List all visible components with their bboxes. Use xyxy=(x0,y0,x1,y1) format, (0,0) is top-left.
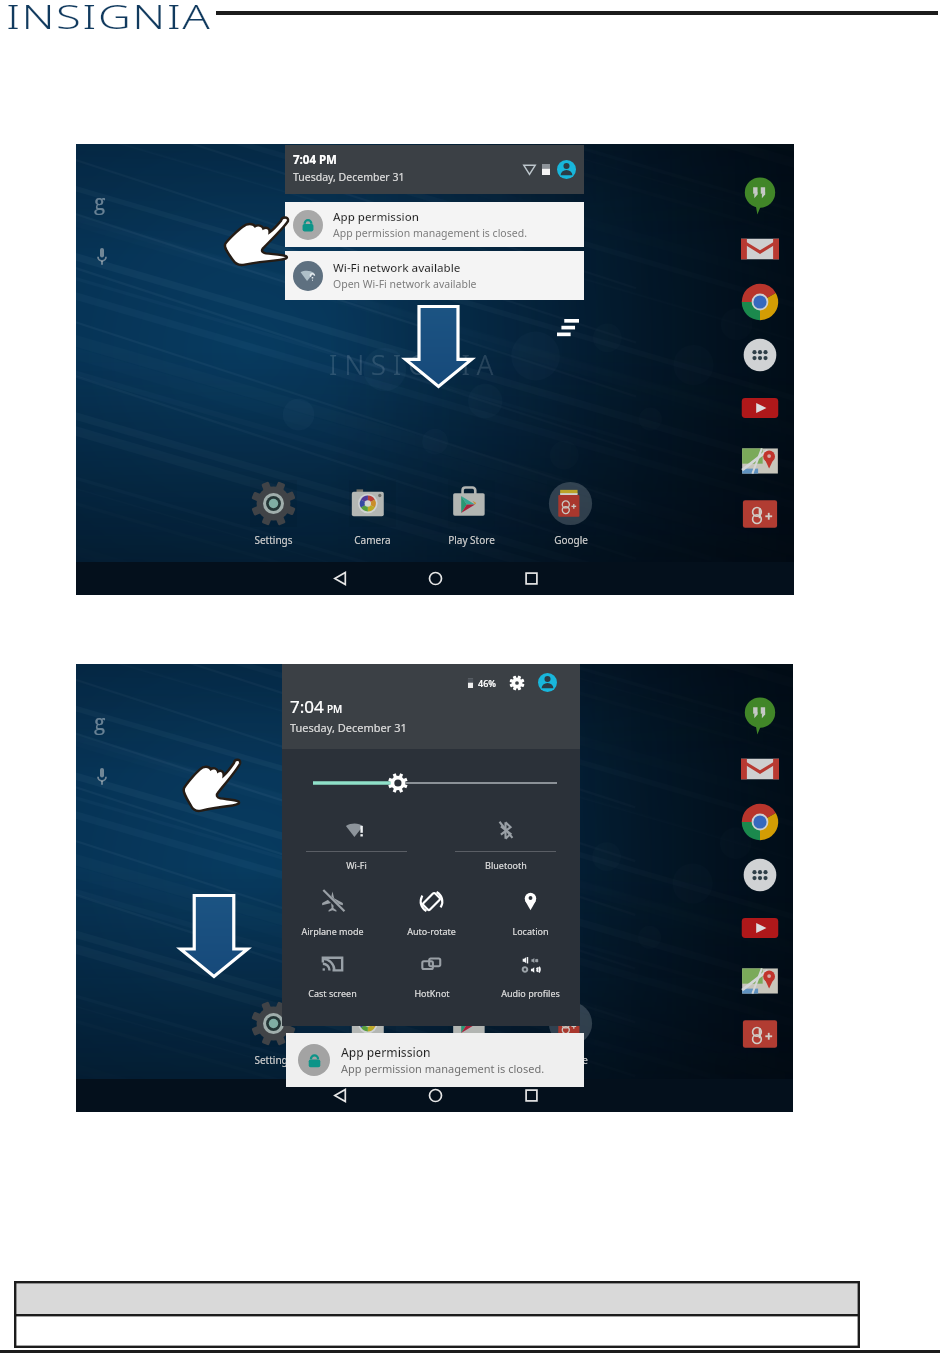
staticText: Bluetooth xyxy=(485,859,527,871)
staticText: Airplane mode xyxy=(301,925,364,937)
staticText: App permission xyxy=(333,209,419,225)
staticText: Play Store xyxy=(448,533,495,547)
button[interactable]: App permission xyxy=(285,202,584,247)
staticText: HotKnot xyxy=(414,987,450,999)
button[interactable]: Gmail xyxy=(741,750,779,788)
button[interactable]: Cast screen xyxy=(282,952,382,999)
button[interactable]: Bluetooth xyxy=(431,819,580,871)
button[interactable]: Airplane mode xyxy=(282,890,382,937)
staticText: INSIGNIA xyxy=(6,0,212,39)
button[interactable]: Home xyxy=(428,571,443,586)
staticText: Tuesday, December 31 xyxy=(293,170,405,184)
staticText: Audio profiles xyxy=(501,987,560,999)
button[interactable]: App permission xyxy=(286,1033,584,1087)
button[interactable]: Wi-Fi xyxy=(282,819,431,871)
staticText: Auto-rotate xyxy=(407,925,456,937)
button[interactable]: Settings xyxy=(509,675,525,691)
button[interactable]: Google xyxy=(521,1000,620,1067)
staticText: Settings xyxy=(254,533,293,547)
button[interactable]: Hangouts xyxy=(741,177,779,215)
staticText: App permission management is closed. xyxy=(333,226,527,240)
staticText: Open Wi-Fi network available xyxy=(333,277,477,291)
staticText: g xyxy=(94,708,106,737)
button[interactable]: Home xyxy=(428,1088,443,1103)
staticText: Play Store xyxy=(448,1053,495,1067)
staticText: Wi-Fi xyxy=(346,859,367,871)
button[interactable]: Settings xyxy=(224,480,323,547)
button[interactable]: User account xyxy=(538,673,557,692)
button[interactable]: Apps xyxy=(741,336,779,374)
button[interactable]: Auto-rotate xyxy=(382,890,481,937)
staticText: App permission management is closed. xyxy=(341,1061,545,1076)
button[interactable]: Wi-Fi network available xyxy=(285,251,584,300)
staticText: Google xyxy=(554,1053,588,1067)
staticText: INSIGNIA xyxy=(329,860,501,897)
button[interactable]: Recent apps xyxy=(524,1088,539,1103)
button[interactable]: Play Store xyxy=(422,1000,521,1067)
staticText: Tuesday, December 31 xyxy=(290,720,407,735)
staticText: App permission xyxy=(341,1044,431,1060)
button[interactable]: Clear all notifications xyxy=(557,319,579,336)
button[interactable]: Google Plus xyxy=(741,495,779,533)
staticText: INSIGNIA xyxy=(329,346,501,383)
button[interactable]: Hangouts xyxy=(741,697,779,735)
button[interactable]: Back xyxy=(333,1088,348,1103)
button[interactable]: Chrome xyxy=(741,283,779,321)
button[interactable]: Chrome xyxy=(741,803,779,841)
button[interactable]: Settings xyxy=(224,1000,323,1067)
button[interactable]: Camera xyxy=(323,1000,422,1067)
button[interactable]: Gmail xyxy=(741,230,779,268)
button[interactable]: Maps xyxy=(741,442,779,480)
staticText: 46% xyxy=(478,677,496,689)
button[interactable]: Play Store xyxy=(422,480,521,547)
button[interactable]: User account xyxy=(557,160,576,179)
staticText: Settings xyxy=(254,1053,293,1067)
button[interactable]: Audio profiles xyxy=(481,952,580,999)
button[interactable]: Camera xyxy=(323,480,422,547)
staticText: Google xyxy=(554,533,588,547)
staticText: 7:04 xyxy=(290,695,324,718)
staticText: Camera xyxy=(354,533,391,547)
button[interactable]: Location xyxy=(481,890,580,937)
button[interactable]: YouTube xyxy=(741,909,779,947)
button[interactable]: Maps xyxy=(741,962,779,1000)
button[interactable] xyxy=(313,775,557,791)
staticText: PM xyxy=(327,702,343,716)
button[interactable]: Back xyxy=(333,571,348,586)
button[interactable]: YouTube xyxy=(741,389,779,427)
staticText: Camera xyxy=(354,1053,391,1067)
button[interactable]: Google Plus xyxy=(741,1015,779,1053)
button[interactable]: Google xyxy=(521,480,620,547)
staticText: Wi-Fi network available xyxy=(333,260,461,276)
button[interactable]: Apps xyxy=(741,856,779,894)
staticText: g xyxy=(94,188,106,217)
staticText: 7:04 PM xyxy=(293,152,337,168)
button[interactable]: 7:04 PM xyxy=(285,145,584,194)
staticText: Cast screen xyxy=(308,987,357,999)
staticText: Location xyxy=(512,925,549,937)
button[interactable]: HotKnot xyxy=(382,952,481,999)
button[interactable]: Recent apps xyxy=(524,571,539,586)
